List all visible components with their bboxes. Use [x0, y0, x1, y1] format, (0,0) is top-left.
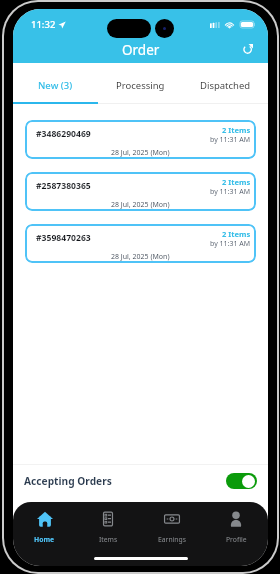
staticText: 28 Jul, 2025 (Mon) — [111, 200, 170, 210]
staticText: Earnings — [158, 535, 186, 544]
staticText: 11:32 — [31, 18, 56, 31]
button[interactable]: Earnings — [140, 511, 204, 546]
staticText: by 11:31 AM — [210, 239, 251, 249]
button[interactable]: New (3) — [13, 66, 98, 104]
staticText: Items — [99, 535, 118, 544]
staticText: #3598470263 — [36, 232, 91, 244]
staticText: Order — [122, 41, 160, 59]
button[interactable]: #3598470263 — [25, 224, 256, 263]
button[interactable]: Accepting orders toggle — [226, 473, 257, 489]
button[interactable]: Home — [13, 511, 76, 546]
staticText: Profile — [226, 535, 247, 544]
staticText: by 11:31 AM — [210, 187, 251, 197]
staticText: 2 Items — [222, 229, 251, 239]
staticText: by 11:31 AM — [210, 135, 251, 145]
staticText: New (3) — [38, 79, 73, 92]
staticText: #3486290469 — [36, 128, 91, 140]
staticText: 28 Jul, 2025 (Mon) — [111, 252, 170, 262]
button[interactable]: Processing — [98, 66, 183, 104]
staticText: 2 Items — [222, 125, 251, 135]
button[interactable]: Dispatched — [183, 66, 268, 104]
staticText: #2587380365 — [36, 180, 91, 192]
button[interactable]: #2587380365 — [25, 172, 256, 211]
staticText: Dispatched — [200, 79, 251, 92]
staticText: Processing — [116, 79, 165, 92]
button[interactable]: #3486290469 — [25, 120, 256, 159]
staticText: 28 Jul, 2025 (Mon) — [111, 148, 170, 158]
button[interactable]: Refresh — [238, 39, 258, 59]
button[interactable]: Items — [76, 511, 140, 546]
staticText: 2 Items — [222, 177, 251, 187]
staticText: Home — [34, 535, 55, 544]
button[interactable]: Profile — [204, 511, 268, 546]
staticText: Accepting Orders — [24, 474, 112, 488]
